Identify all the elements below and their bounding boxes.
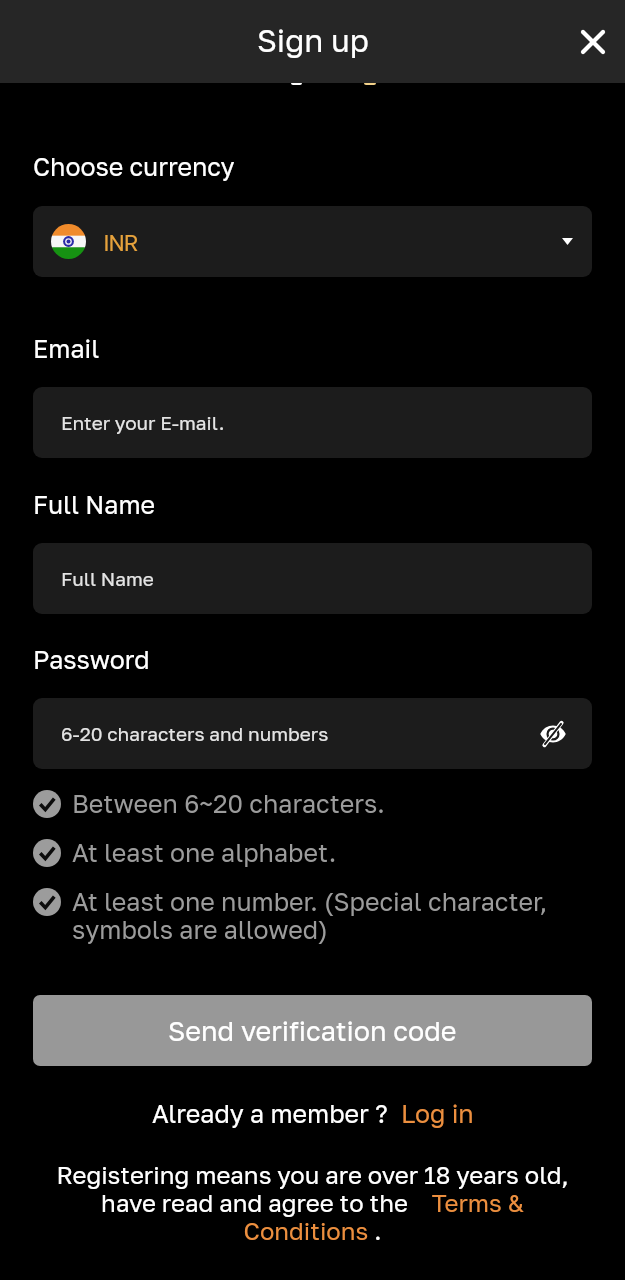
button[interactable]: Full Name bbox=[33, 543, 592, 614]
button[interactable]: Send verification code bbox=[33, 995, 592, 1066]
staticText: Log in bbox=[401, 1098, 474, 1128]
button[interactable]: Enter your E-mail. bbox=[33, 387, 592, 458]
staticText: 6-20 characters and numbers bbox=[61, 722, 329, 745]
button[interactable]: INR bbox=[33, 206, 592, 277]
staticText: Full Name bbox=[33, 489, 156, 519]
button[interactable]: Log in bbox=[401, 1098, 474, 1128]
staticText: Full Name bbox=[61, 567, 154, 590]
staticText: Enter your E-mail. bbox=[61, 411, 225, 434]
staticText: Already a member ? bbox=[152, 1098, 388, 1128]
staticText: At least one number. (Special character,… bbox=[72, 886, 592, 944]
button[interactable]: 6-20 characters and numbers bbox=[33, 698, 592, 769]
staticText: At least one alphabet. bbox=[72, 837, 337, 867]
staticText: Email bbox=[33, 333, 100, 363]
staticText: Registering means you are over 18 years … bbox=[54, 1160, 571, 1245]
staticText: Send verification code bbox=[168, 1015, 457, 1047]
staticText: Password bbox=[33, 644, 150, 674]
button[interactable]: Close bbox=[567, 16, 619, 68]
staticText: Choose currency bbox=[33, 151, 235, 181]
button[interactable]: Show password bbox=[532, 713, 574, 755]
staticText: Sign up bbox=[257, 22, 369, 59]
staticText: INR bbox=[103, 229, 137, 255]
staticText: Between 6~20 characters. bbox=[72, 788, 385, 818]
